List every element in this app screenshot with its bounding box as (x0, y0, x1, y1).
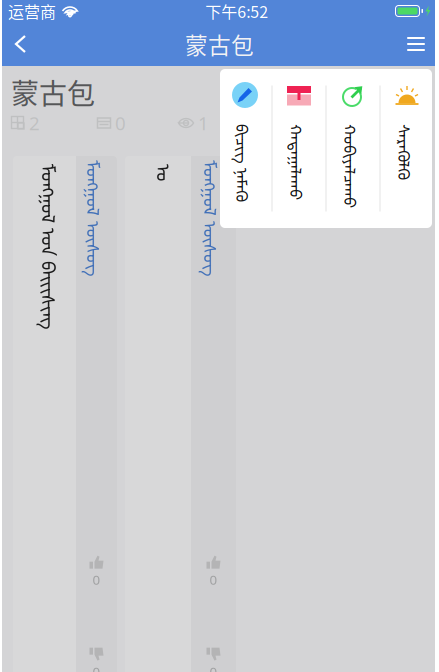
button[interactable]: Menu (393, 22, 439, 66)
button[interactable]: ᠬᠠᠳᠠᠭᠠᠯᠠᠬᠤ (272, 69, 325, 228)
staticText: ᠬᠤᠪᠢᠶᠠᠯᠴᠠᠬᠤ (300, 163, 384, 191)
button[interactable]: Like (76, 555, 117, 589)
button[interactable]: ᠬᠤᠪᠢᠶᠠᠯᠴᠠᠬᠤ (326, 69, 379, 228)
button[interactable]: Dislike (76, 647, 117, 672)
staticText: ᠰᠡᠷᠡᠭᠦᠯᠬᠦ (354, 163, 410, 191)
staticText: 运营商 (8, 0, 56, 23)
staticText: 1 (198, 111, 209, 135)
button[interactable]: Back (0, 22, 41, 66)
staticText: ᠮᠣᠩᠭᠣᠯ ᠦᠰᠦᠭ (63, 295, 180, 325)
button[interactable]: Like (191, 555, 236, 589)
staticText: 0 (92, 571, 100, 588)
button[interactable]: ᠰᠡᠷᠡᠭᠦᠯᠬᠦ (380, 69, 433, 228)
staticText: 0 (92, 663, 100, 672)
staticText: 蒙古包 (11, 72, 95, 112)
staticText: ᠪᠢᠴᠢᠭ ᠨᠡᠮᠡᠬᠦ (192, 163, 270, 191)
staticText: 0 (209, 663, 217, 672)
button[interactable]: Dislike (191, 647, 236, 672)
staticText: ᠬᠠᠳᠠᠭᠠᠯᠠᠬᠤ (246, 163, 322, 191)
staticText: 0 (209, 571, 217, 588)
button[interactable]: ᠪᠢᠴᠢᠭ ᠨᠡᠮᠡᠬᠦ (218, 69, 271, 228)
staticText: ᠮᠣᠩᠭᠣᠯ ᠦᠰᠦᠭ (0, 295, 63, 325)
staticText: 下午6:52 (205, 0, 268, 23)
staticText: 2 (29, 111, 40, 135)
staticText: 0 (115, 111, 126, 135)
staticText: 蒙古包 (185, 28, 254, 60)
